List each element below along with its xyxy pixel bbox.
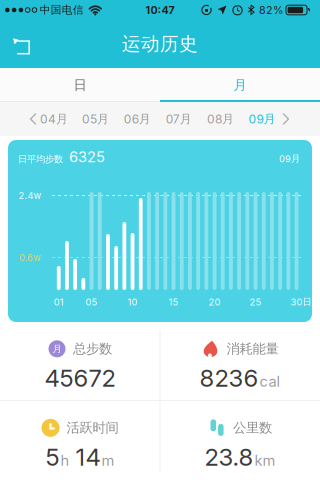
staticText: 总步数 (73, 341, 112, 357)
button[interactable]: 日 (0, 68, 160, 102)
staticText: 30日 (290, 296, 311, 308)
staticText: 15 (169, 296, 179, 307)
staticText: 06月 (124, 112, 151, 126)
staticText: 10:47 (145, 3, 174, 16)
button[interactable]: 上一页 (23, 102, 43, 136)
staticText: 活跃时间 (66, 420, 118, 436)
button[interactable]: 06月 (116, 102, 158, 136)
staticText: 82% (259, 4, 283, 16)
staticText: 5 (45, 443, 59, 471)
button[interactable]: 05月 (75, 102, 116, 136)
staticText: 25 (250, 296, 262, 307)
staticText: 6325 (69, 148, 105, 166)
staticText: 2.4w (18, 190, 41, 201)
staticText: 04月 (40, 112, 68, 126)
staticText: 0.6w (19, 252, 41, 263)
staticText: km (254, 452, 275, 469)
staticText: 20 (209, 296, 221, 307)
staticText: 08月 (207, 112, 234, 126)
staticText: m (101, 452, 114, 469)
button[interactable]: 月 (160, 68, 320, 102)
button[interactable]: 返回 (0, 20, 44, 68)
staticText: 05月 (82, 112, 109, 126)
staticText: 日平均步数 (18, 153, 63, 165)
staticText: 23.8 (204, 443, 253, 471)
staticText: 中国电信 (40, 3, 84, 16)
staticText: 07月 (166, 112, 192, 126)
staticText: 09月 (248, 112, 275, 126)
staticText: 日 (73, 77, 86, 93)
button[interactable]: 下一页 (276, 102, 296, 136)
staticText: 消耗能量 (226, 341, 278, 357)
button[interactable]: 07月 (158, 102, 200, 136)
staticText: 45672 (44, 364, 115, 392)
staticText: 09月 (279, 153, 300, 164)
button[interactable]: 04月 (33, 102, 75, 136)
staticText: cal (259, 373, 280, 390)
staticText: 运动历史 (122, 32, 198, 55)
staticText: 14 (75, 443, 100, 471)
staticText: 10 (127, 296, 137, 307)
staticText: 05 (85, 296, 97, 307)
staticText: 月 (233, 77, 246, 93)
staticText: 01 (54, 296, 64, 307)
button[interactable]: 08月 (200, 102, 241, 136)
button[interactable]: 09月 (241, 102, 283, 136)
staticText: h (60, 452, 69, 469)
staticText: 8236 (199, 364, 258, 392)
staticText: 月 (52, 343, 61, 355)
staticText: 公里数 (233, 420, 272, 436)
